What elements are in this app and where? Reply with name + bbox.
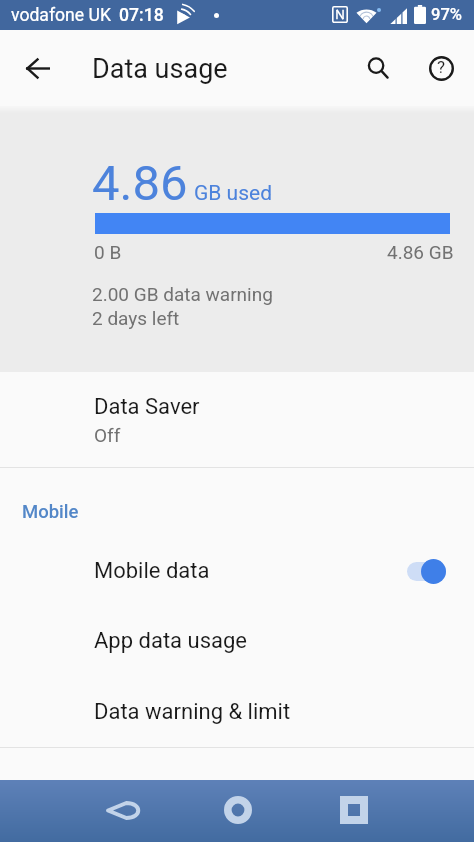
staticText: Data warning & limit	[94, 699, 291, 725]
button[interactable]: Data warning & limit	[0, 676, 474, 747]
button[interactable]: Back	[100, 786, 148, 834]
button[interactable]: Recent apps	[330, 786, 378, 834]
staticText: 07:18	[119, 5, 164, 26]
button[interactable]: Help	[413, 40, 469, 96]
staticText: 4.86	[92, 155, 188, 212]
staticText: Data usage	[92, 53, 228, 85]
staticText: 97%	[431, 5, 463, 24]
staticText: ?	[437, 57, 446, 77]
staticText: 2 days left	[92, 307, 180, 329]
staticText: Data Saver	[94, 394, 200, 420]
button[interactable]: Search	[350, 40, 406, 96]
button[interactable]: Navigate up	[10, 40, 66, 96]
button[interactable]: Home	[214, 786, 262, 834]
staticText: Mobile data	[94, 558, 210, 584]
staticText: vodafone UK	[11, 5, 111, 26]
button[interactable]: App data usage	[0, 606, 474, 676]
staticText: 4.86 GB	[387, 241, 454, 263]
staticText: 0 B	[94, 241, 122, 263]
staticText: GB used	[194, 181, 272, 206]
staticText: App data usage	[94, 628, 247, 654]
button[interactable]: Data Saver	[0, 372, 474, 467]
staticText: Off	[94, 424, 121, 446]
staticText: 2.00 GB data warning	[92, 283, 273, 305]
staticText: Mobile	[22, 501, 79, 523]
button[interactable]: Mobile data	[0, 536, 474, 606]
